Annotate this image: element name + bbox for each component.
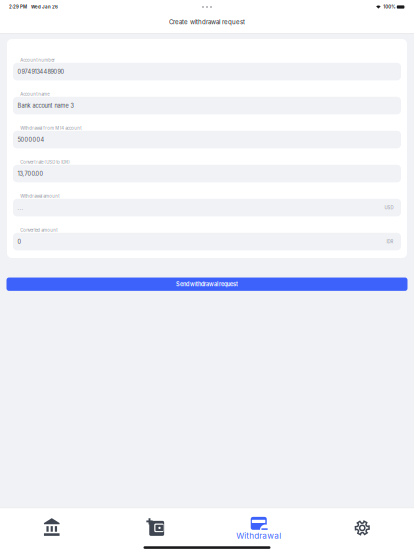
button[interactable]: Accounts (0, 508, 103, 543)
staticText: 09749134489090 (18, 68, 65, 75)
staticText: Account name (20, 92, 49, 97)
staticText: Convert rate (USD to IDR) (20, 160, 70, 165)
staticText: USD (384, 205, 393, 210)
button[interactable]: Deposit (103, 508, 207, 543)
staticText: Withdrawal (236, 531, 281, 541)
staticText: Send withdrawal request (176, 281, 238, 288)
staticText: Create withdrawal request (169, 18, 245, 26)
staticText: ... (18, 204, 24, 211)
staticText: 2:29 PM (9, 4, 27, 10)
staticText: Bank account name 3 (18, 102, 74, 109)
staticText: Wed Jan 26 (31, 4, 58, 10)
staticText: Converted amount (20, 228, 57, 233)
button[interactable]: Settings (310, 508, 414, 543)
staticText: Account number (20, 58, 55, 63)
staticText: 13,700.00 (18, 170, 44, 177)
staticText: 0 (18, 238, 22, 245)
staticText: 5000004 (18, 136, 45, 143)
staticText: IDR (386, 239, 393, 244)
button[interactable]: Withdrawal (207, 508, 310, 543)
staticText: 100% (383, 4, 395, 10)
staticText: Withdrawal amount (20, 194, 59, 199)
staticText: Withdrawal from MT4 account (20, 126, 81, 131)
button[interactable]: Send withdrawal request (6, 277, 407, 291)
